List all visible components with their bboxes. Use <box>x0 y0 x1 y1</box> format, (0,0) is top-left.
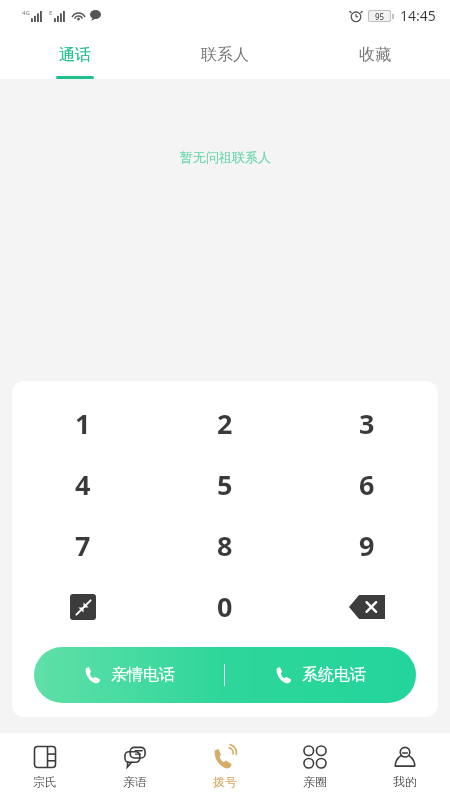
button[interactable]: 7 <box>12 515 154 576</box>
button[interactable]: 亲圈 <box>270 733 360 800</box>
button[interactable]: 8 <box>154 515 296 576</box>
button[interactable]: 4 <box>12 454 154 515</box>
staticText: 4 <box>75 466 91 503</box>
staticText: 暂无问祖联系人 <box>180 149 271 165</box>
button[interactable]: 拨号 <box>180 733 270 800</box>
staticText: 8 <box>217 527 233 564</box>
button[interactable]: 收起键盘 <box>12 576 154 637</box>
staticText: 14:45 <box>400 6 436 25</box>
button[interactable]: 5 <box>154 454 296 515</box>
staticText: 0 <box>217 588 233 625</box>
staticText: 95 <box>375 11 385 21</box>
staticText: 6 <box>359 466 375 503</box>
staticText: 通话 <box>59 45 91 65</box>
staticText: 拨号 <box>213 774 237 789</box>
staticText: 我的 <box>393 774 417 789</box>
button[interactable]: 删除 <box>296 576 438 637</box>
staticText: 1 <box>75 405 91 442</box>
staticText: E <box>49 9 53 17</box>
button[interactable]: 0 <box>154 576 296 637</box>
staticText: 亲情电话 <box>111 665 175 685</box>
staticText: 4G <box>22 9 30 17</box>
staticText: 联系人 <box>201 45 249 65</box>
button[interactable]: 2 <box>154 393 296 454</box>
staticText: 5 <box>217 466 233 503</box>
button[interactable]: 亲语 <box>90 733 180 800</box>
staticText: 收藏 <box>359 45 391 65</box>
button[interactable]: 3 <box>296 393 438 454</box>
button[interactable]: 6 <box>296 454 438 515</box>
staticText: 3 <box>359 405 375 442</box>
staticText: 亲语 <box>123 774 147 789</box>
button[interactable]: 亲情电话 <box>34 647 224 703</box>
button[interactable]: 通话 <box>0 30 150 79</box>
button[interactable]: 系统电话 <box>225 647 416 703</box>
staticText: 7 <box>75 527 91 564</box>
staticText: 系统电话 <box>302 665 366 685</box>
button[interactable]: 宗氏 <box>0 733 90 800</box>
staticText: 宗氏 <box>33 774 57 789</box>
button[interactable]: 我的 <box>360 733 450 800</box>
staticText: 2 <box>217 405 233 442</box>
button[interactable]: 联系人 <box>150 30 300 79</box>
button[interactable]: 9 <box>296 515 438 576</box>
button[interactable]: 1 <box>12 393 154 454</box>
staticText: 9 <box>359 527 375 564</box>
button[interactable]: 收藏 <box>300 30 450 79</box>
staticText: 亲圈 <box>303 774 327 789</box>
